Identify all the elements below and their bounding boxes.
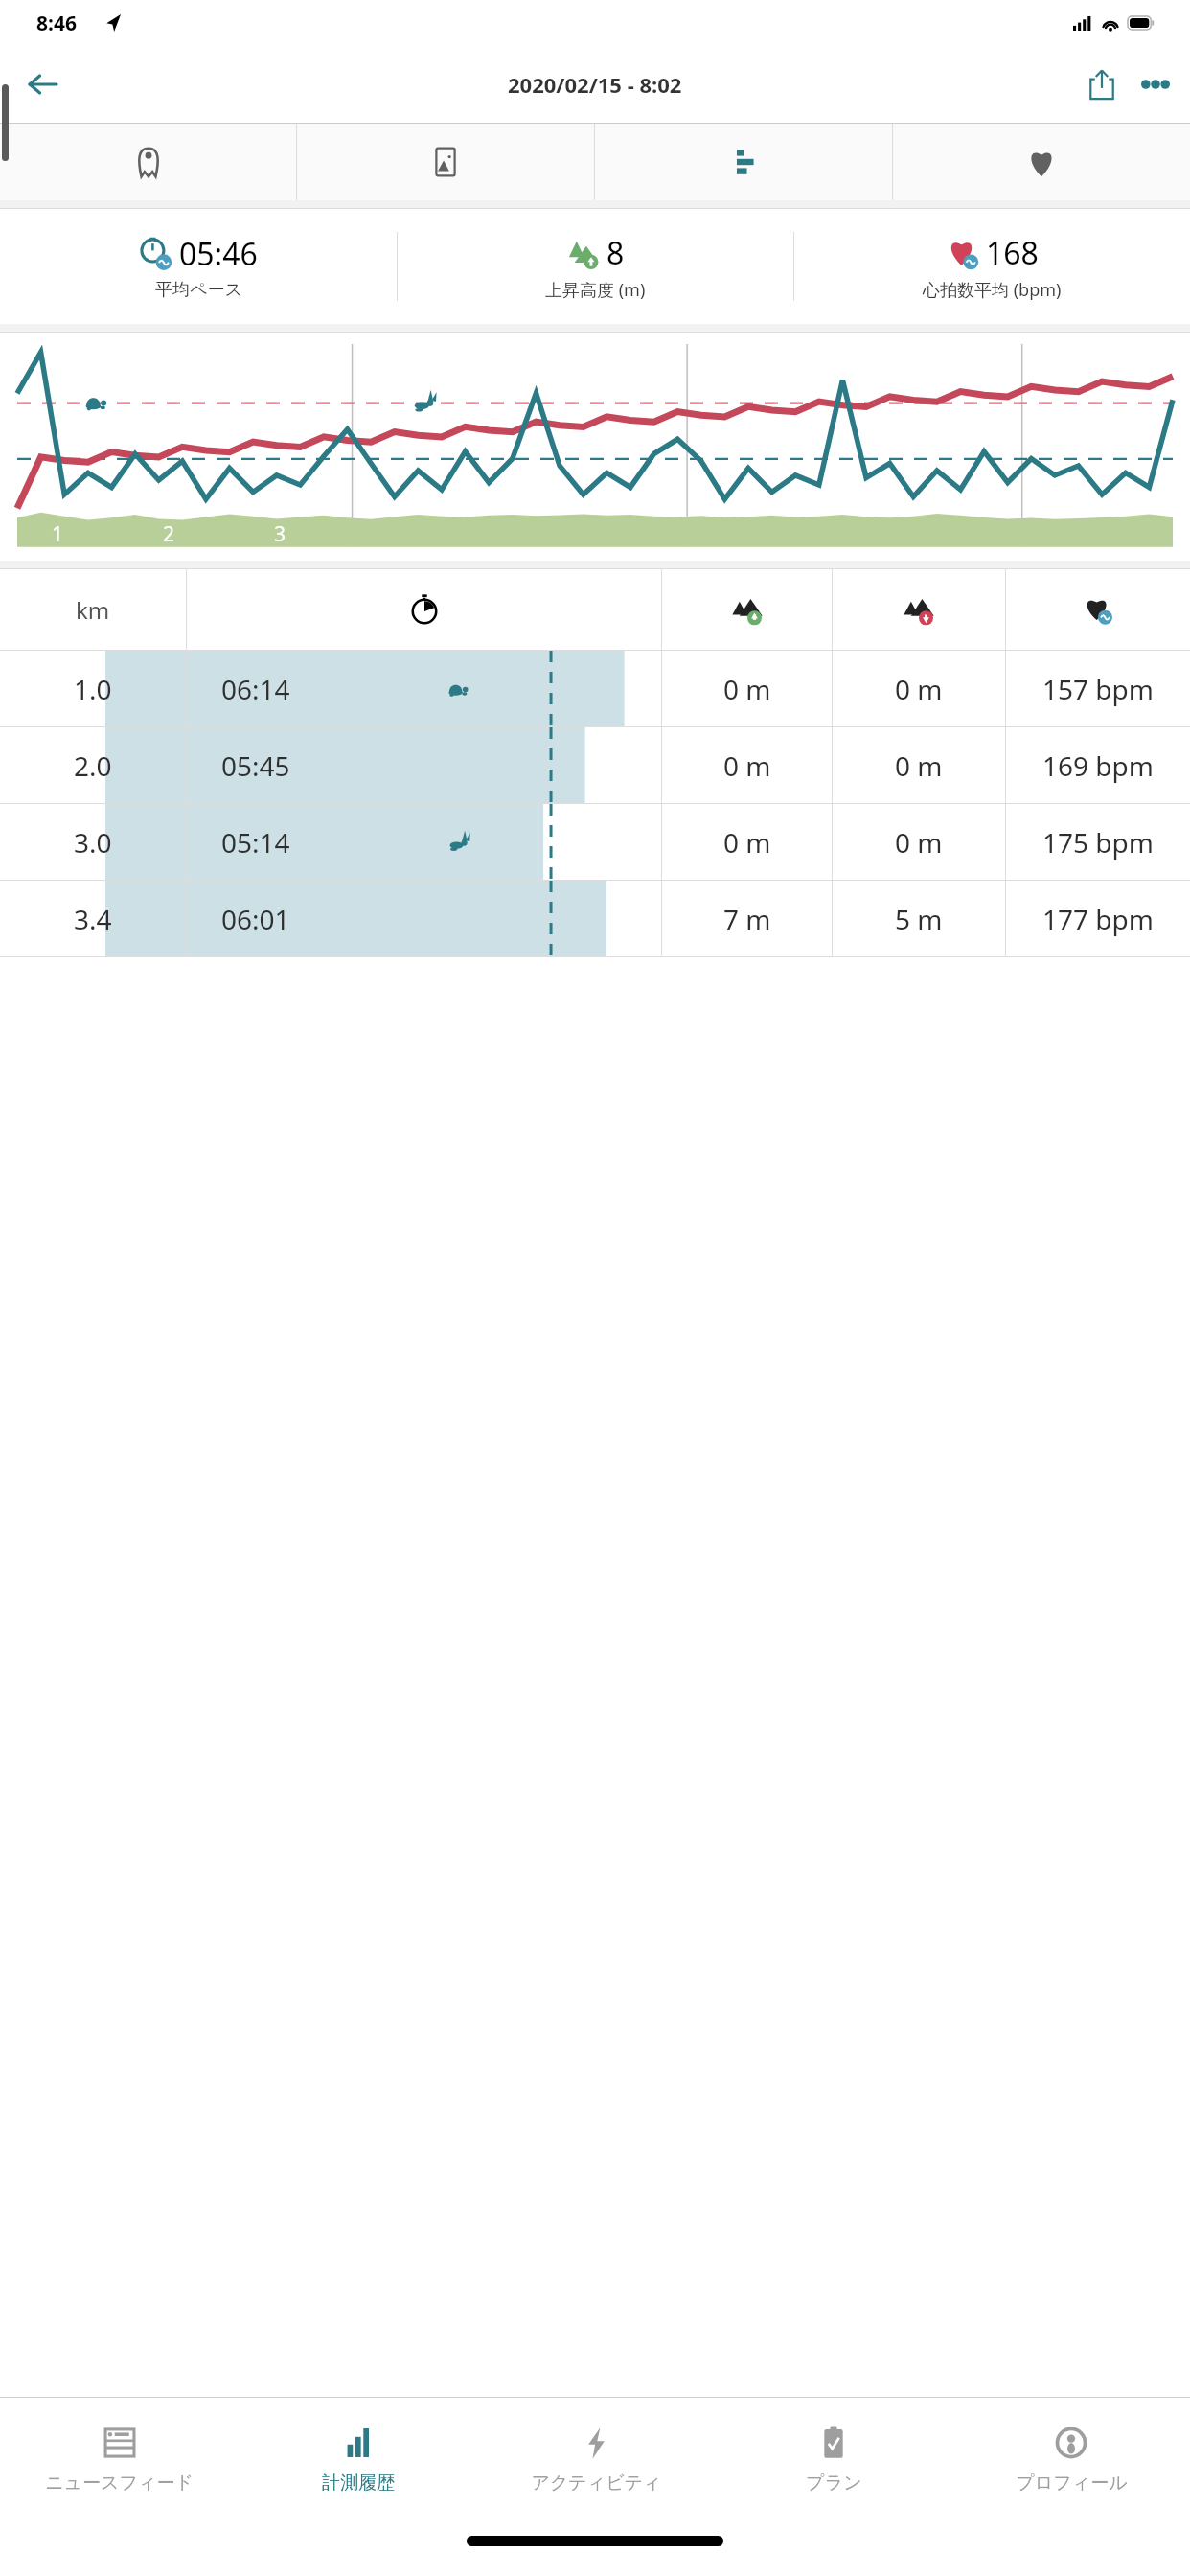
staticText: 05:46 [179, 233, 258, 275]
staticText: 05:45 [221, 747, 290, 784]
staticText: 157 bpm [1042, 671, 1154, 707]
staticText: 0 m [895, 747, 943, 784]
staticText: 0 m [723, 671, 771, 707]
button[interactable]: 05:46 [0, 209, 397, 324]
staticText: 3.0 [74, 824, 112, 861]
button[interactable]: 2.0 [0, 727, 1190, 803]
staticText: 8 [606, 232, 625, 274]
staticText: 3 [274, 520, 286, 548]
staticText: 1.0 [74, 671, 112, 707]
staticText: プラン [806, 2472, 862, 2495]
staticText: プロフィール [1016, 2472, 1128, 2495]
staticText: 2 [163, 520, 175, 548]
staticText: 3.4 [74, 901, 112, 937]
button[interactable]: プラン [715, 2398, 952, 2518]
staticText: km [76, 594, 110, 626]
staticText: 0 m [895, 824, 943, 861]
staticText: 心拍数平均 (bpm) [923, 278, 1062, 302]
button[interactable]: 1.0 [0, 651, 1190, 726]
staticText: 0 m [723, 824, 771, 861]
button[interactable]: Back [15, 57, 69, 111]
staticText: 2020/02/15 - 8:02 [508, 70, 682, 99]
button[interactable]: Map [0, 124, 296, 200]
button[interactable]: 計測履歴 [239, 2398, 477, 2518]
staticText: 8:46 [36, 10, 77, 37]
button[interactable]: 168 [794, 209, 1190, 324]
staticText: 168 [986, 232, 1039, 274]
button[interactable]: Heart rate [893, 124, 1190, 200]
staticText: 平均ペース [155, 279, 242, 301]
button[interactable]: 3.0 [0, 804, 1190, 880]
staticText: 06:14 [221, 671, 290, 707]
button[interactable]: Charts [595, 124, 892, 200]
staticText: ニュースフィード [45, 2472, 194, 2495]
staticText: 05:14 [221, 824, 290, 861]
staticText: 計測履歴 [322, 2472, 395, 2495]
staticText: 0 m [895, 671, 943, 707]
staticText: 1 [52, 520, 64, 548]
staticText: 0 m [723, 747, 771, 784]
button[interactable]: アクティビティ [477, 2398, 715, 2518]
staticText: 175 bpm [1042, 824, 1154, 861]
button[interactable]: Share [1073, 56, 1131, 113]
staticText: 177 bpm [1042, 901, 1154, 937]
staticText: 06:01 [221, 901, 290, 937]
button[interactable]: 8 [398, 209, 793, 324]
button[interactable]: Photos [297, 124, 594, 200]
button[interactable]: 3.4 [0, 881, 1190, 956]
staticText: 7 m [723, 901, 771, 937]
staticText: 5 m [895, 901, 943, 937]
staticText: 2.0 [74, 747, 112, 784]
staticText: アクティビティ [531, 2472, 662, 2495]
button[interactable]: More options [1131, 55, 1180, 114]
button[interactable]: ニュースフィード [0, 2398, 239, 2518]
staticText: 上昇高度 (m) [545, 278, 646, 302]
button[interactable]: プロフィール [952, 2398, 1190, 2518]
staticText: 169 bpm [1042, 747, 1154, 784]
